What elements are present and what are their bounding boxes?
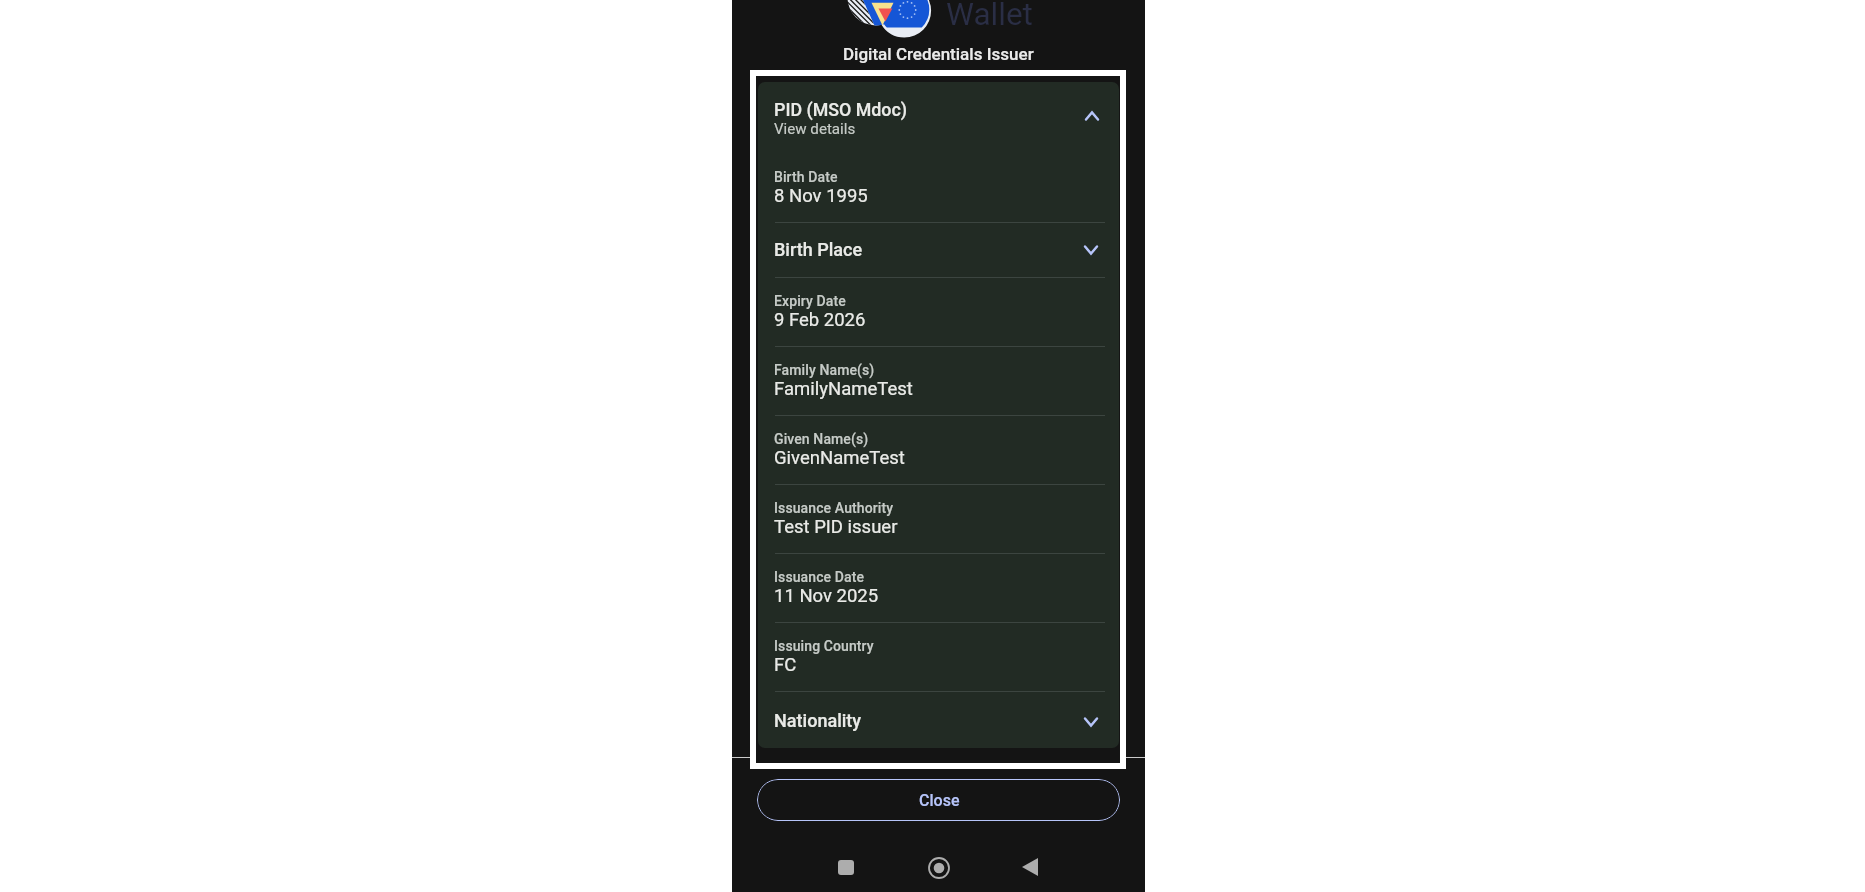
staticText: Birth Place xyxy=(774,239,863,260)
staticText: Issuing Country xyxy=(774,638,874,654)
staticText: Issuance Authority xyxy=(774,500,894,516)
staticText: Issuance Date xyxy=(774,569,865,585)
other: Expand xyxy=(1080,711,1102,733)
button[interactable]: Birth Place xyxy=(774,223,1104,278)
button[interactable]: Home xyxy=(915,844,963,892)
staticText: Birth Date xyxy=(774,169,838,185)
other: Collapse xyxy=(1081,105,1103,127)
staticText: FC xyxy=(774,654,797,676)
staticText: Nationality xyxy=(774,710,862,731)
button[interactable]: Nationality xyxy=(774,692,1104,747)
staticText: FamilyNameTest xyxy=(774,378,913,400)
staticText: View details xyxy=(774,120,856,138)
staticText: 9 Feb 2026 xyxy=(774,309,866,331)
staticText: 8 Nov 1995 xyxy=(774,185,868,207)
staticText: GivenNameTest xyxy=(774,447,905,469)
button[interactable]: Recent apps xyxy=(822,843,870,891)
staticText: Close xyxy=(919,791,960,810)
staticText: Given Name(s) xyxy=(774,431,869,447)
staticText: Digital Credentials Issuer xyxy=(843,44,1034,64)
staticText: Family Name(s) xyxy=(774,362,875,378)
other: Expand xyxy=(1080,239,1102,261)
button[interactable]: Back xyxy=(1006,843,1054,891)
staticText: Expiry Date xyxy=(774,293,846,309)
staticText: 11 Nov 2025 xyxy=(774,585,879,607)
button[interactable]: Close xyxy=(757,779,1120,821)
staticText: PID (MSO Mdoc) xyxy=(774,99,908,120)
staticText: Wallet xyxy=(946,0,1033,33)
button[interactable]: PID (MSO Mdoc) xyxy=(774,99,1104,138)
staticText: Test PID issuer xyxy=(774,516,898,538)
